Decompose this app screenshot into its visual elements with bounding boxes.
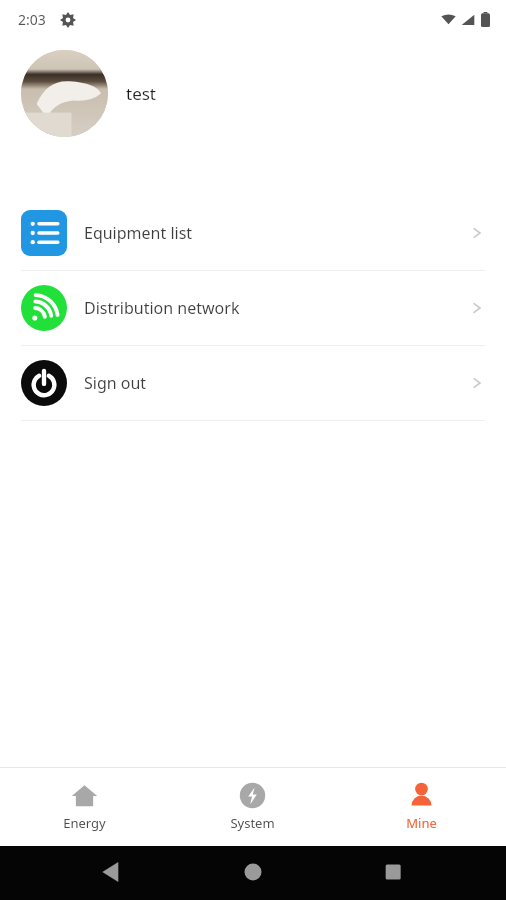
button[interactable]: Sign out — [0, 346, 506, 420]
button[interactable]: test — [0, 38, 506, 148]
button[interactable]: Mine — [337, 774, 506, 840]
staticText: Mine — [406, 814, 437, 832]
staticText: Equipment list — [84, 222, 193, 244]
staticText: System — [230, 814, 275, 832]
button[interactable]: System — [168, 774, 337, 840]
button[interactable]: Equipment list — [0, 196, 506, 270]
staticText: 2:03 — [18, 10, 46, 29]
button[interactable]: Distribution network — [0, 271, 506, 345]
staticText: Energy — [63, 814, 106, 832]
button[interactable]: Energy — [0, 774, 168, 840]
staticText: Distribution network — [84, 297, 240, 319]
staticText: Sign out — [84, 372, 147, 394]
staticText: test — [126, 82, 157, 105]
